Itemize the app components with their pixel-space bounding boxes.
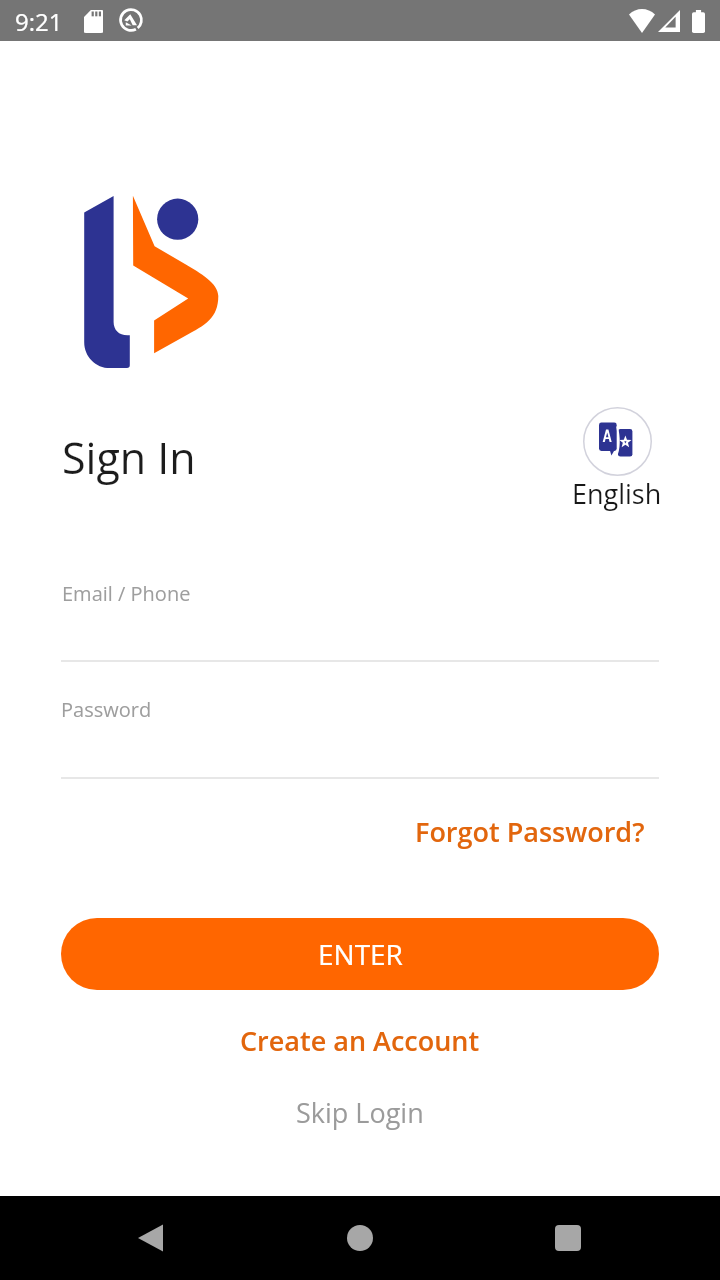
button[interactable]: Recent apps	[532, 1202, 604, 1274]
staticText: ENTER	[318, 935, 403, 973]
staticText: 9:21	[15, 5, 63, 38]
button[interactable]: Create an Account	[226, 1012, 494, 1069]
staticText: English	[572, 475, 662, 512]
button[interactable]: Forgot Password?	[403, 803, 657, 860]
button[interactable]: Home	[324, 1202, 396, 1274]
staticText: Email / Phone	[62, 580, 191, 607]
staticText: Password	[61, 696, 152, 723]
button[interactable]: ENTER	[61, 918, 659, 990]
staticText: Skip Login	[296, 1094, 424, 1131]
button[interactable]: Back	[114, 1202, 186, 1274]
staticText: Forgot Password?	[415, 813, 645, 850]
staticText: Sign In	[62, 428, 196, 487]
button[interactable]: Change language, English	[570, 400, 664, 510]
staticText: Create an Account	[240, 1022, 480, 1059]
button[interactable]: Password	[61, 679, 659, 779]
button[interactable]: Email / Phone	[61, 562, 659, 662]
button[interactable]: Skip Login	[282, 1084, 438, 1141]
